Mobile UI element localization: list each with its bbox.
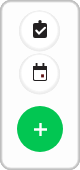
- button[interactable]: Add: [17, 106, 63, 152]
- button[interactable]: Tasks: [22, 12, 57, 47]
- button[interactable]: Calendar: [22, 55, 57, 90]
